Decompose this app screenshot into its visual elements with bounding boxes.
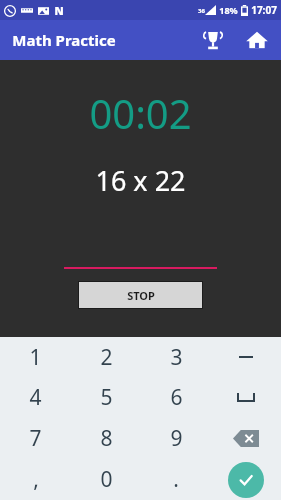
button[interactable]: Backspace: [211, 418, 281, 459]
button[interactable]: 3: [141, 337, 211, 377]
staticText: 6: [170, 383, 183, 412]
button[interactable]: ,: [0, 459, 71, 500]
button[interactable]: Space: [211, 377, 281, 418]
button[interactable]: Done: [211, 459, 281, 500]
button[interactable]: 9: [141, 418, 211, 459]
button[interactable]: .: [141, 459, 211, 500]
button[interactable]: Leaderboard: [197, 24, 229, 56]
staticText: 16 x 22: [95, 162, 186, 199]
button[interactable]: 0: [71, 459, 141, 500]
staticText: 8: [100, 424, 113, 453]
button[interactable]: 6: [141, 377, 211, 418]
button[interactable]: STOP: [79, 282, 202, 308]
staticText: 9: [170, 424, 183, 453]
staticText: 5: [100, 383, 113, 412]
button[interactable]: 1: [0, 337, 71, 377]
button[interactable]: Minus: [211, 337, 281, 377]
button[interactable]: Home: [241, 24, 273, 56]
staticText: 17:07: [251, 3, 277, 17]
staticText: .: [173, 465, 179, 494]
button[interactable]: 8: [71, 418, 141, 459]
staticText: 00:02: [89, 86, 192, 140]
button[interactable]: 7: [0, 418, 71, 459]
staticText: 1: [29, 343, 42, 372]
staticText: 0: [100, 465, 113, 494]
staticText: ,: [33, 465, 39, 494]
staticText: 2: [100, 343, 113, 372]
staticText: 7: [29, 424, 42, 453]
staticText: N: [54, 3, 64, 18]
staticText: Math Practice: [12, 30, 116, 50]
staticText: 4: [29, 383, 42, 412]
button[interactable]: 4: [0, 377, 71, 418]
staticText: 3: [170, 343, 183, 372]
button[interactable]: 2: [71, 337, 141, 377]
staticText: STOP: [127, 288, 155, 303]
staticText: 18%: [219, 4, 238, 16]
button[interactable]: 5: [71, 377, 141, 418]
staticText: 36: [198, 7, 205, 15]
button[interactable]: Answer field: [64, 247, 217, 269]
